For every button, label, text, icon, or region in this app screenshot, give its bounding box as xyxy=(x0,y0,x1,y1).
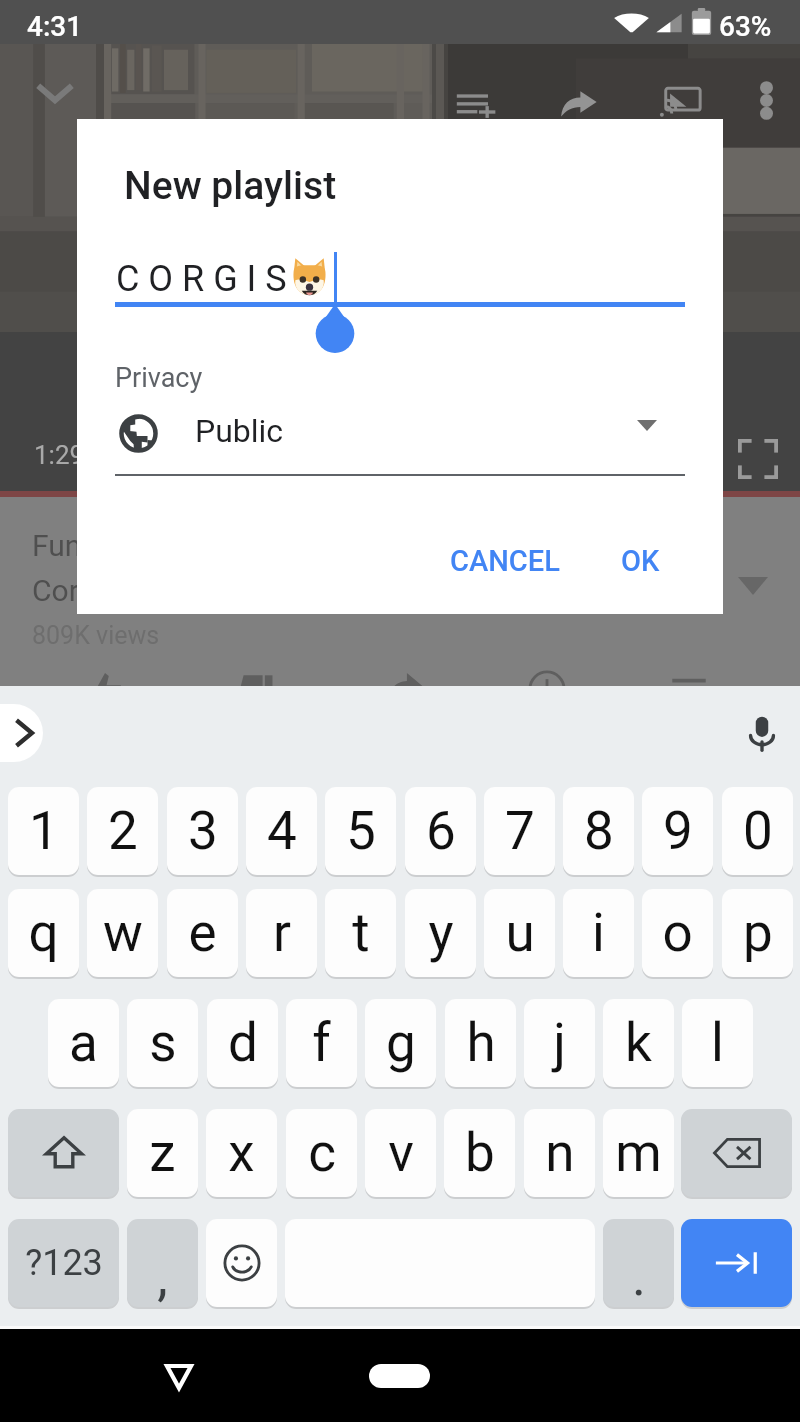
staticText: i xyxy=(592,902,605,964)
staticText: , xyxy=(157,1246,168,1307)
button[interactable]: z xyxy=(127,1109,198,1197)
staticText: y xyxy=(428,902,454,964)
staticText: 4 xyxy=(267,800,297,862)
staticText: g xyxy=(386,1012,416,1074)
staticText: j xyxy=(553,1012,566,1074)
button[interactable]: c xyxy=(286,1109,357,1197)
button[interactable]: Expand suggestions xyxy=(0,704,43,762)
staticText: Public xyxy=(195,412,284,450)
button[interactable]: n xyxy=(524,1109,595,1197)
button[interactable]: Backspace xyxy=(681,1109,792,1197)
staticText: 9 xyxy=(663,800,693,862)
button[interactable]: 8 xyxy=(563,787,634,875)
button[interactable]: k xyxy=(603,999,674,1087)
button[interactable]: Enter xyxy=(681,1219,792,1307)
staticText: 0 xyxy=(743,800,773,862)
staticText: CANCEL xyxy=(450,544,560,578)
button[interactable]: 6 xyxy=(405,787,476,875)
staticText: OK xyxy=(621,544,660,578)
staticText: 7 xyxy=(505,800,535,862)
staticText: b xyxy=(465,1122,495,1184)
staticText: f xyxy=(312,1012,331,1074)
button[interactable]: j xyxy=(524,999,595,1087)
button[interactable]: More options xyxy=(730,64,800,136)
staticText: q xyxy=(28,902,59,964)
button[interactable]: 3 xyxy=(167,787,238,875)
button[interactable]: Share xyxy=(542,67,614,139)
button[interactable]: i xyxy=(563,889,634,977)
button[interactable]: . xyxy=(603,1219,674,1307)
button[interactable]: l xyxy=(682,999,753,1087)
staticText: c xyxy=(308,1122,336,1184)
staticText: u xyxy=(505,902,535,964)
button[interactable]: v xyxy=(365,1109,436,1197)
staticText: r xyxy=(273,902,291,964)
button[interactable]: 7 xyxy=(484,787,555,875)
staticText: k xyxy=(625,1012,652,1074)
button[interactable]: x xyxy=(206,1109,277,1197)
button[interactable]: ?123 xyxy=(8,1219,119,1307)
staticText: Fun xyxy=(32,528,82,563)
button[interactable]: h xyxy=(445,999,516,1087)
button[interactable]: d xyxy=(207,999,278,1087)
button[interactable]: a xyxy=(48,999,119,1087)
staticText: m xyxy=(615,1122,662,1184)
button[interactable]: Emoji xyxy=(206,1219,277,1307)
button[interactable]: q xyxy=(8,889,79,977)
button[interactable]: t xyxy=(325,889,396,977)
button[interactable]: y xyxy=(405,889,476,977)
staticText: z xyxy=(149,1122,176,1184)
staticText: 6 xyxy=(426,800,456,862)
button[interactable]: Shift xyxy=(8,1109,119,1197)
staticText: s xyxy=(149,1012,177,1074)
button[interactable]: Minimize xyxy=(30,68,80,118)
button[interactable]: b xyxy=(444,1109,515,1197)
button[interactable]: f xyxy=(286,999,357,1087)
button[interactable]: CANCEL xyxy=(432,528,578,594)
button[interactable]: r xyxy=(246,889,317,977)
button[interactable]: 0 xyxy=(722,787,793,875)
button[interactable]: Public xyxy=(107,402,693,470)
staticText: New playlist xyxy=(124,163,337,209)
staticText: 8 xyxy=(584,800,614,862)
staticText: h xyxy=(466,1012,496,1074)
staticText: ?123 xyxy=(25,1242,103,1284)
button[interactable]: p xyxy=(722,889,793,977)
button[interactable]: , xyxy=(127,1219,198,1307)
button[interactable]: 1 xyxy=(8,787,79,875)
staticText: e xyxy=(188,902,217,964)
staticText: 3 xyxy=(188,800,218,862)
button[interactable]: g xyxy=(365,999,436,1087)
button[interactable]: Cast xyxy=(643,65,715,137)
button[interactable]: Home xyxy=(369,1364,430,1388)
button[interactable]: Voice input xyxy=(733,705,791,763)
staticText: x xyxy=(228,1122,255,1184)
button[interactable]: u xyxy=(484,889,555,977)
button[interactable]: w xyxy=(87,889,158,977)
button[interactable]: 2 xyxy=(87,787,158,875)
staticText: 4:31 xyxy=(27,10,83,43)
button[interactable]: o xyxy=(642,889,713,977)
staticText: l xyxy=(711,1012,724,1074)
button[interactable]: m xyxy=(603,1109,674,1197)
staticText: 1 xyxy=(29,800,59,862)
staticText: Privacy xyxy=(115,362,203,394)
button[interactable]: Add to queue xyxy=(440,69,512,141)
staticText: 5 xyxy=(346,800,376,862)
button[interactable]: 4 xyxy=(246,787,317,875)
staticText: Cor xyxy=(32,573,79,608)
staticText: 809K views xyxy=(32,621,160,650)
button[interactable]: 9 xyxy=(642,787,713,875)
staticText: a xyxy=(69,1012,98,1074)
button[interactable]: OK xyxy=(603,528,678,594)
button[interactable]: e xyxy=(167,889,238,977)
button[interactable]: Fullscreen xyxy=(738,439,778,479)
staticText: p xyxy=(743,902,773,964)
staticText: v xyxy=(388,1122,414,1184)
staticText: 2 xyxy=(108,800,138,862)
staticText: . xyxy=(632,1246,646,1307)
button[interactable]: Back xyxy=(155,1353,203,1401)
button[interactable]: 5 xyxy=(325,787,396,875)
button[interactable]: s xyxy=(127,999,198,1087)
